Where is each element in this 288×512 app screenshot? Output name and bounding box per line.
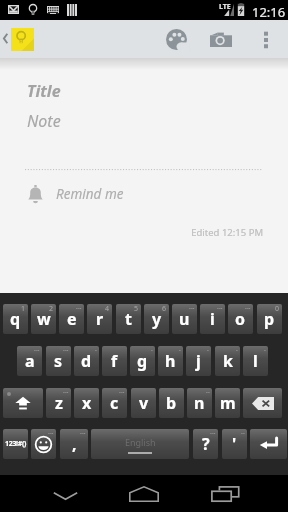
button[interactable]: i (200, 304, 225, 334)
staticText: 2 (49, 304, 54, 314)
staticText: · (236, 346, 238, 356)
button[interactable]: 123!#() (3, 429, 28, 459)
staticText: Note (27, 110, 61, 132)
button[interactable]: e (59, 304, 84, 334)
button[interactable]: n (187, 388, 212, 418)
button[interactable]: r (87, 304, 112, 334)
staticText: p (264, 308, 275, 330)
button[interactable]: Back (35, 475, 95, 512)
button[interactable]: English (91, 429, 189, 459)
staticText: 123!#() (5, 439, 27, 449)
staticText: Remind me (56, 185, 124, 203)
button[interactable]: w (31, 304, 56, 334)
button[interactable]: u (172, 304, 197, 334)
button[interactable] (250, 429, 287, 459)
button[interactable]: More options (252, 20, 280, 58)
button[interactable]: l (243, 346, 268, 376)
staticText: d (81, 350, 92, 372)
button[interactable]: f (102, 346, 127, 376)
button[interactable]: Change color (156, 20, 196, 58)
staticText: f (111, 350, 118, 372)
button[interactable]: g (130, 346, 155, 376)
button[interactable] (243, 388, 282, 418)
staticText: , (72, 433, 77, 455)
staticText: j (196, 350, 201, 372)
staticText: h (165, 350, 176, 372)
staticText: Edited 12:15 PM (0, 226, 263, 239)
button[interactable]: k (215, 346, 240, 376)
button[interactable]: s (46, 346, 71, 376)
staticText: e (67, 308, 77, 330)
button[interactable]: Recent apps (195, 475, 255, 512)
staticText: · (95, 346, 97, 356)
staticText: x (82, 392, 92, 414)
staticText: q (10, 308, 21, 330)
staticText: t (125, 308, 132, 330)
staticText: ··· (119, 388, 125, 398)
button[interactable]: v (131, 388, 156, 418)
staticText: ? (202, 433, 210, 455)
button[interactable]: t (116, 304, 141, 334)
button[interactable]: Remind me (0, 182, 288, 206)
button[interactable]: y (144, 304, 169, 334)
staticText: 4 (105, 304, 110, 314)
button[interactable]: j (186, 346, 211, 376)
staticText: English (125, 436, 156, 448)
staticText: a (25, 350, 35, 372)
button[interactable]: m (215, 388, 240, 418)
button[interactable]: c (102, 388, 127, 418)
staticText: m (220, 392, 236, 414)
staticText: LTE (219, 2, 231, 12)
staticText: l (253, 350, 258, 372)
staticText: c (110, 392, 119, 414)
staticText: z (55, 392, 63, 414)
staticText: ··· (63, 388, 69, 398)
staticText: w (37, 308, 51, 330)
button[interactable]: ' (222, 429, 247, 459)
staticText: 12:16 (252, 3, 286, 21)
staticText: 6 (162, 304, 167, 314)
staticText: r (96, 308, 104, 330)
button[interactable]: o (228, 304, 253, 334)
staticText: ··· (245, 304, 251, 314)
button[interactable]: b (159, 388, 184, 418)
button[interactable]: ··· (31, 429, 56, 459)
button[interactable]: , (60, 429, 88, 459)
staticText: ··· (34, 346, 40, 356)
staticText: v (139, 392, 149, 414)
staticText: · (151, 346, 153, 356)
button[interactable]: a (17, 346, 42, 376)
staticText: · (179, 346, 181, 356)
staticText: ' (232, 433, 237, 455)
button[interactable]: p (257, 304, 282, 334)
staticText: 5 (134, 304, 139, 314)
button[interactable]: z (46, 388, 71, 418)
staticText: ··· (80, 429, 86, 439)
staticText: · (207, 346, 209, 356)
button[interactable] (3, 388, 43, 418)
button[interactable]: Home (114, 475, 174, 512)
staticText: 0 (275, 304, 280, 314)
button[interactable]: ? (193, 429, 218, 459)
staticText: Title (27, 80, 61, 102)
staticText: 1 (21, 304, 26, 314)
staticText: o (235, 308, 246, 330)
staticText: ··· (210, 429, 216, 439)
button[interactable]: Navigate up (0, 20, 42, 58)
button[interactable]: h (158, 346, 183, 376)
staticText: g (137, 350, 148, 372)
button[interactable]: q (3, 304, 28, 334)
staticText: u (179, 308, 190, 330)
staticText: i (210, 308, 215, 330)
staticText: b (166, 392, 177, 414)
button[interactable]: d (74, 346, 99, 376)
staticText: ··· (217, 304, 223, 314)
staticText: s (54, 350, 63, 372)
button[interactable]: Camera (201, 20, 241, 58)
button[interactable]: x (74, 388, 99, 418)
staticText: · (264, 346, 266, 356)
staticText: k (223, 350, 233, 372)
staticText: y (152, 308, 162, 330)
staticText: ·· (241, 429, 245, 439)
staticText: n (194, 392, 205, 414)
